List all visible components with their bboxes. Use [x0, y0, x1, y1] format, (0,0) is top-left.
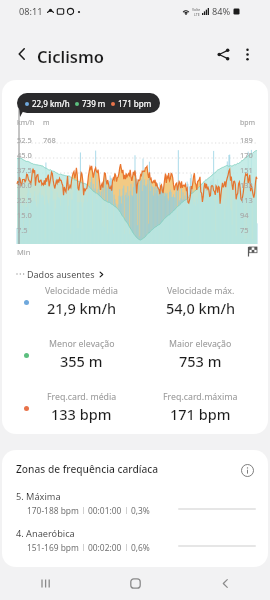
staticText: 0,3%: [131, 505, 150, 516]
button[interactable]: 4. Anaeróbica: [2, 525, 268, 559]
staticText: 739 m: [82, 98, 106, 109]
staticText: 113: [240, 195, 253, 205]
staticText: Ciclismo: [37, 45, 104, 67]
button[interactable]: Back: [180, 567, 270, 600]
staticText: 189: [240, 135, 253, 145]
staticText: 151: [240, 165, 253, 175]
staticText: 75: [240, 225, 249, 235]
staticText: 22.5: [17, 195, 32, 205]
staticText: Dados ausentes: [27, 268, 95, 280]
staticText: Volte: [192, 7, 201, 12]
staticText: 21,9 km/h: [47, 298, 117, 318]
button[interactable]: More options: [231, 38, 263, 70]
button[interactable]: 5. Máxima: [2, 488, 268, 522]
staticText: 151-169 bpm: [27, 542, 79, 553]
staticText: km/h: [17, 118, 35, 128]
staticText: 171 bpm: [170, 404, 231, 424]
staticText: 84%: [212, 5, 231, 18]
staticText: 22,9 km/h: [32, 98, 70, 109]
staticText: 00:02:00: [88, 542, 122, 553]
staticText: Zonas de frequência cardíaca: [16, 462, 159, 476]
staticText: 171 bpm: [118, 98, 152, 109]
staticText: Freq.card.máxima: [163, 391, 238, 403]
button[interactable]: Back: [6, 38, 38, 70]
staticText: 52.5: [17, 135, 32, 145]
staticText: 45.0: [17, 150, 32, 160]
button[interactable]: Dados ausentes: [16, 266, 105, 282]
staticText: 08:11: [19, 5, 43, 18]
staticText: 355 m: [60, 351, 103, 371]
button[interactable]: Home: [90, 567, 180, 600]
staticText: 768: [43, 135, 56, 145]
staticText: 0,6%: [131, 542, 150, 553]
staticText: 37.5: [17, 165, 32, 175]
staticText: Maior elevação: [169, 338, 232, 350]
staticText: Velocidade máx.: [167, 285, 235, 297]
staticText: 54,0 km/h: [166, 298, 236, 318]
staticText: Freq.card. média: [47, 391, 117, 403]
staticText: 5. Máxima: [16, 490, 61, 503]
staticText: 753 m: [179, 351, 222, 371]
staticText: LTE: [194, 12, 200, 17]
button[interactable]: Info: [234, 457, 260, 483]
staticText: 30.0: [17, 180, 32, 190]
staticText: 7.5: [17, 225, 28, 235]
staticText: 170: [240, 150, 253, 160]
staticText: 133 bpm: [51, 404, 112, 424]
staticText: 4. Anaeróbica: [16, 527, 75, 540]
staticText: 15.0: [17, 210, 32, 220]
staticText: Velocidade média: [45, 285, 118, 297]
button[interactable]: Share: [207, 38, 239, 70]
staticText: Menor elevação: [49, 338, 115, 350]
staticText: 00:01:00: [88, 505, 122, 516]
staticText: Min: [17, 247, 31, 257]
staticText: m: [43, 118, 50, 128]
staticText: 132: [240, 180, 253, 190]
staticText: 170-188 bpm: [27, 505, 79, 516]
staticText: 94: [240, 210, 249, 220]
staticText: bpm: [240, 118, 256, 128]
button[interactable]: Recent apps: [0, 567, 90, 600]
